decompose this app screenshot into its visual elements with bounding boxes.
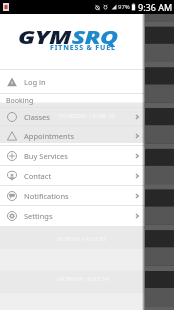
staticText: GYM [18,26,72,49]
staticText: SRQ [72,26,118,49]
button[interactable]: Contact [0,166,145,185]
button[interactable]: Notifications [0,186,145,205]
staticText: 9:36 AM [138,1,173,13]
staticText: MONDAY / JULY 04 [57,275,109,283]
button[interactable]: Classes [0,108,145,125]
staticText: FITNESS & FUEL [50,43,116,53]
staticText: Contact [24,171,52,181]
staticText: Classes [24,112,50,122]
button[interactable]: Log in [0,70,145,93]
staticText: Appointments [24,131,75,141]
staticText: Notifications [24,191,69,201]
staticText: SUNDAY / JULY 03 [57,235,107,243]
staticText: 97% [118,3,130,11]
button[interactable]: Appointments [0,126,145,145]
staticText: Log in [24,77,46,87]
staticText: Settings [24,211,53,221]
button[interactable]: Buy Services [0,146,145,165]
button[interactable]: Settings [0,206,145,225]
staticText: THURSDAY / JUNE 20 [57,112,116,120]
staticText: Booking [6,96,34,106]
staticText: Buy Services [24,151,68,161]
